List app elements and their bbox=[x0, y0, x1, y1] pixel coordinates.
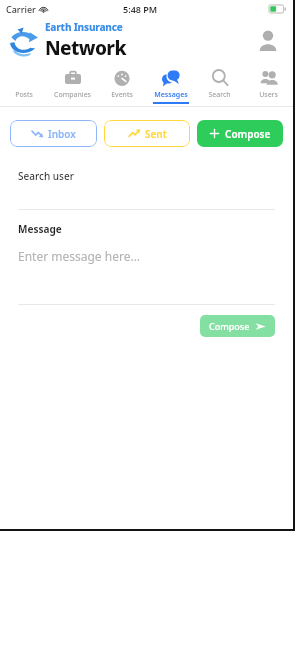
button[interactable]: Companies bbox=[48, 68, 97, 106]
staticText: Compose bbox=[225, 127, 271, 141]
staticText: Posts bbox=[15, 90, 33, 100]
staticText: Compose bbox=[209, 320, 250, 332]
button[interactable]: Users bbox=[244, 68, 293, 106]
staticText: Sent bbox=[145, 127, 167, 141]
button[interactable]: Posts bbox=[0, 68, 48, 106]
button[interactable]: Search bbox=[195, 68, 244, 106]
button[interactable]: Enter message here... bbox=[18, 248, 275, 264]
staticText: Message bbox=[18, 222, 62, 236]
staticText: Messages bbox=[154, 90, 188, 100]
staticText: Users bbox=[259, 90, 278, 100]
button[interactable]: Compose bbox=[197, 120, 283, 147]
staticText: Earth Insurance bbox=[45, 20, 123, 34]
button[interactable]: Compose bbox=[200, 315, 275, 337]
staticText: Carrier bbox=[6, 3, 36, 15]
staticText: Search bbox=[208, 90, 231, 100]
button[interactable]: Events bbox=[97, 68, 146, 106]
button[interactable]: Profile bbox=[255, 27, 281, 53]
staticText: 5:48 PM bbox=[123, 3, 158, 15]
button[interactable]: Messages bbox=[146, 68, 195, 106]
staticText: Events bbox=[111, 90, 133, 100]
button[interactable]: Search user bbox=[18, 169, 74, 183]
staticText: Inbox bbox=[48, 127, 76, 141]
button[interactable]: Inbox bbox=[10, 120, 97, 147]
staticText: Companies bbox=[54, 90, 91, 100]
staticText: Network bbox=[45, 35, 126, 61]
button[interactable]: Sent bbox=[104, 120, 190, 147]
